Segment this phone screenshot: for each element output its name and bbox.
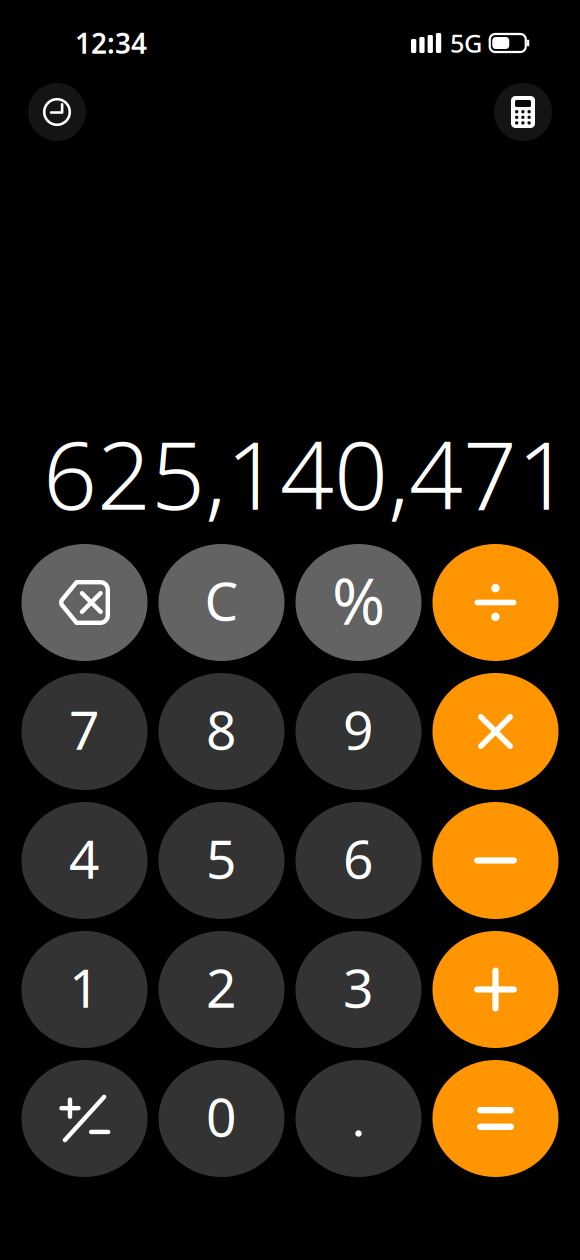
- button[interactable]: %: [295, 544, 421, 661]
- button[interactable]: 7: [21, 673, 147, 790]
- button[interactable]: Multiply: [432, 673, 558, 790]
- staticText: 9: [343, 694, 374, 764]
- staticText: 6: [343, 823, 374, 893]
- button[interactable]: Add: [432, 931, 558, 1048]
- button[interactable]: History: [28, 83, 86, 141]
- staticText: 625,140,471: [43, 410, 571, 536]
- staticText: 3: [343, 952, 374, 1022]
- staticText: 4: [69, 823, 100, 893]
- button[interactable]: Calculator mode: [494, 83, 552, 141]
- button[interactable]: 1: [21, 931, 147, 1048]
- staticText: 5G: [450, 26, 482, 60]
- button[interactable]: 4: [21, 802, 147, 919]
- button[interactable]: 8: [158, 673, 284, 790]
- staticText: 2: [206, 952, 237, 1022]
- staticText: 5: [206, 823, 237, 893]
- staticText: 12:34: [75, 24, 147, 62]
- staticText: C: [204, 565, 238, 635]
- button[interactable]: Subtract: [432, 802, 558, 919]
- staticText: 7: [69, 694, 100, 764]
- button[interactable]: 5: [158, 802, 284, 919]
- button[interactable]: .: [295, 1060, 421, 1177]
- button[interactable]: 6: [295, 802, 421, 919]
- staticText: 1: [69, 952, 100, 1022]
- button[interactable]: Delete: [21, 544, 147, 661]
- staticText: 8: [206, 694, 237, 764]
- button[interactable]: 9: [295, 673, 421, 790]
- staticText: %: [332, 557, 385, 642]
- button[interactable]: 3: [295, 931, 421, 1048]
- button[interactable]: C: [158, 544, 284, 661]
- button[interactable]: Divide: [432, 544, 558, 661]
- button[interactable]: 2: [158, 931, 284, 1048]
- button[interactable]: Equals: [432, 1060, 558, 1177]
- button[interactable]: 0: [158, 1060, 284, 1177]
- button[interactable]: Plus minus: [21, 1060, 147, 1177]
- staticText: 0: [206, 1081, 237, 1151]
